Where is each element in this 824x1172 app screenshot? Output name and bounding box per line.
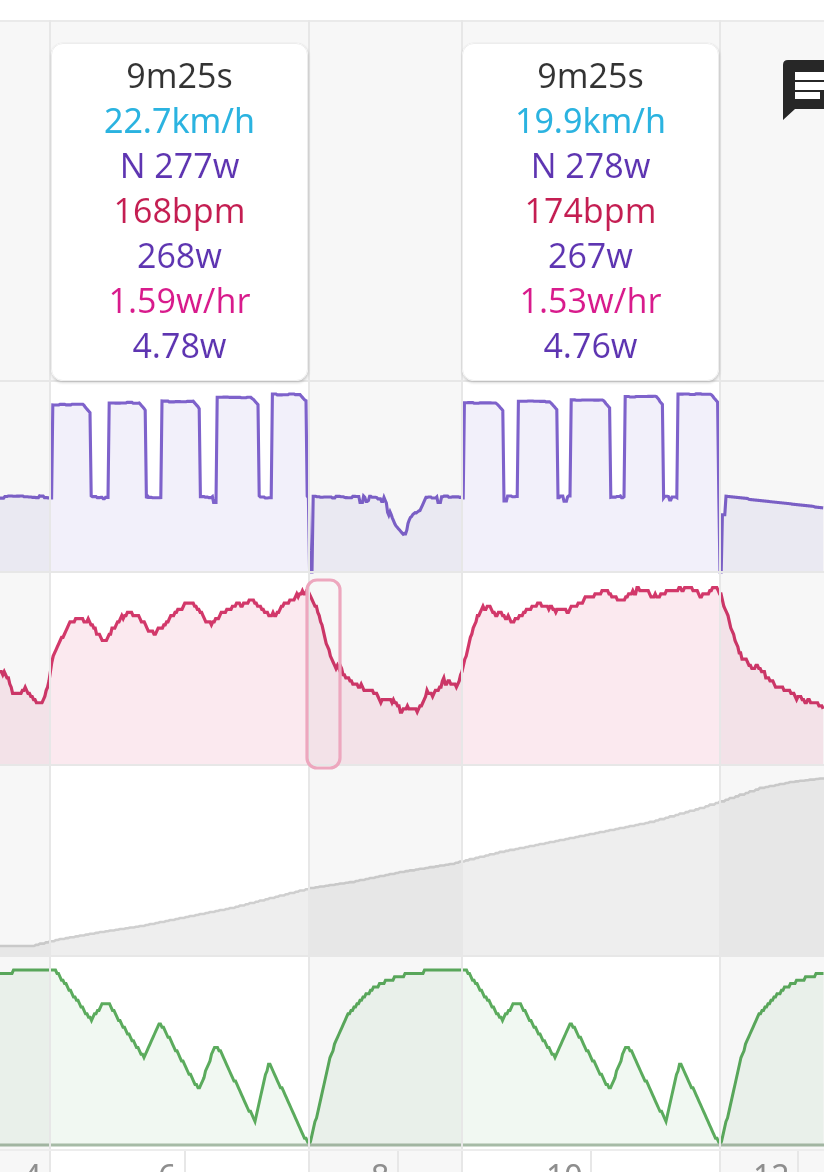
staticText: 9m25s [462,52,719,97]
staticText: N 277w [51,142,308,187]
staticText: 1.59w/hr [51,277,308,322]
staticText: 174bpm [462,187,719,232]
staticText: 19.9km/h [462,97,719,142]
staticText: 9m25s [51,52,308,97]
button[interactable]: Comments [783,60,824,122]
staticText: 268w [51,232,308,277]
staticText: 168bpm [51,187,308,232]
staticText: 10 [546,1154,583,1172]
staticText: N 278w [462,142,719,187]
staticText: 8 [371,1154,390,1172]
button[interactable]: 9m25s [462,43,719,381]
staticText: 22.7km/h [51,97,308,142]
staticText: 12 [753,1154,790,1172]
staticText: 6 [158,1154,177,1172]
staticText: 4 [23,1154,42,1172]
staticText: 4.76w [462,322,719,367]
staticText: 267w [462,232,719,277]
button[interactable]: 9m25s [51,43,308,381]
staticText: 1.53w/hr [462,277,719,322]
staticText: 4.78w [51,322,308,367]
